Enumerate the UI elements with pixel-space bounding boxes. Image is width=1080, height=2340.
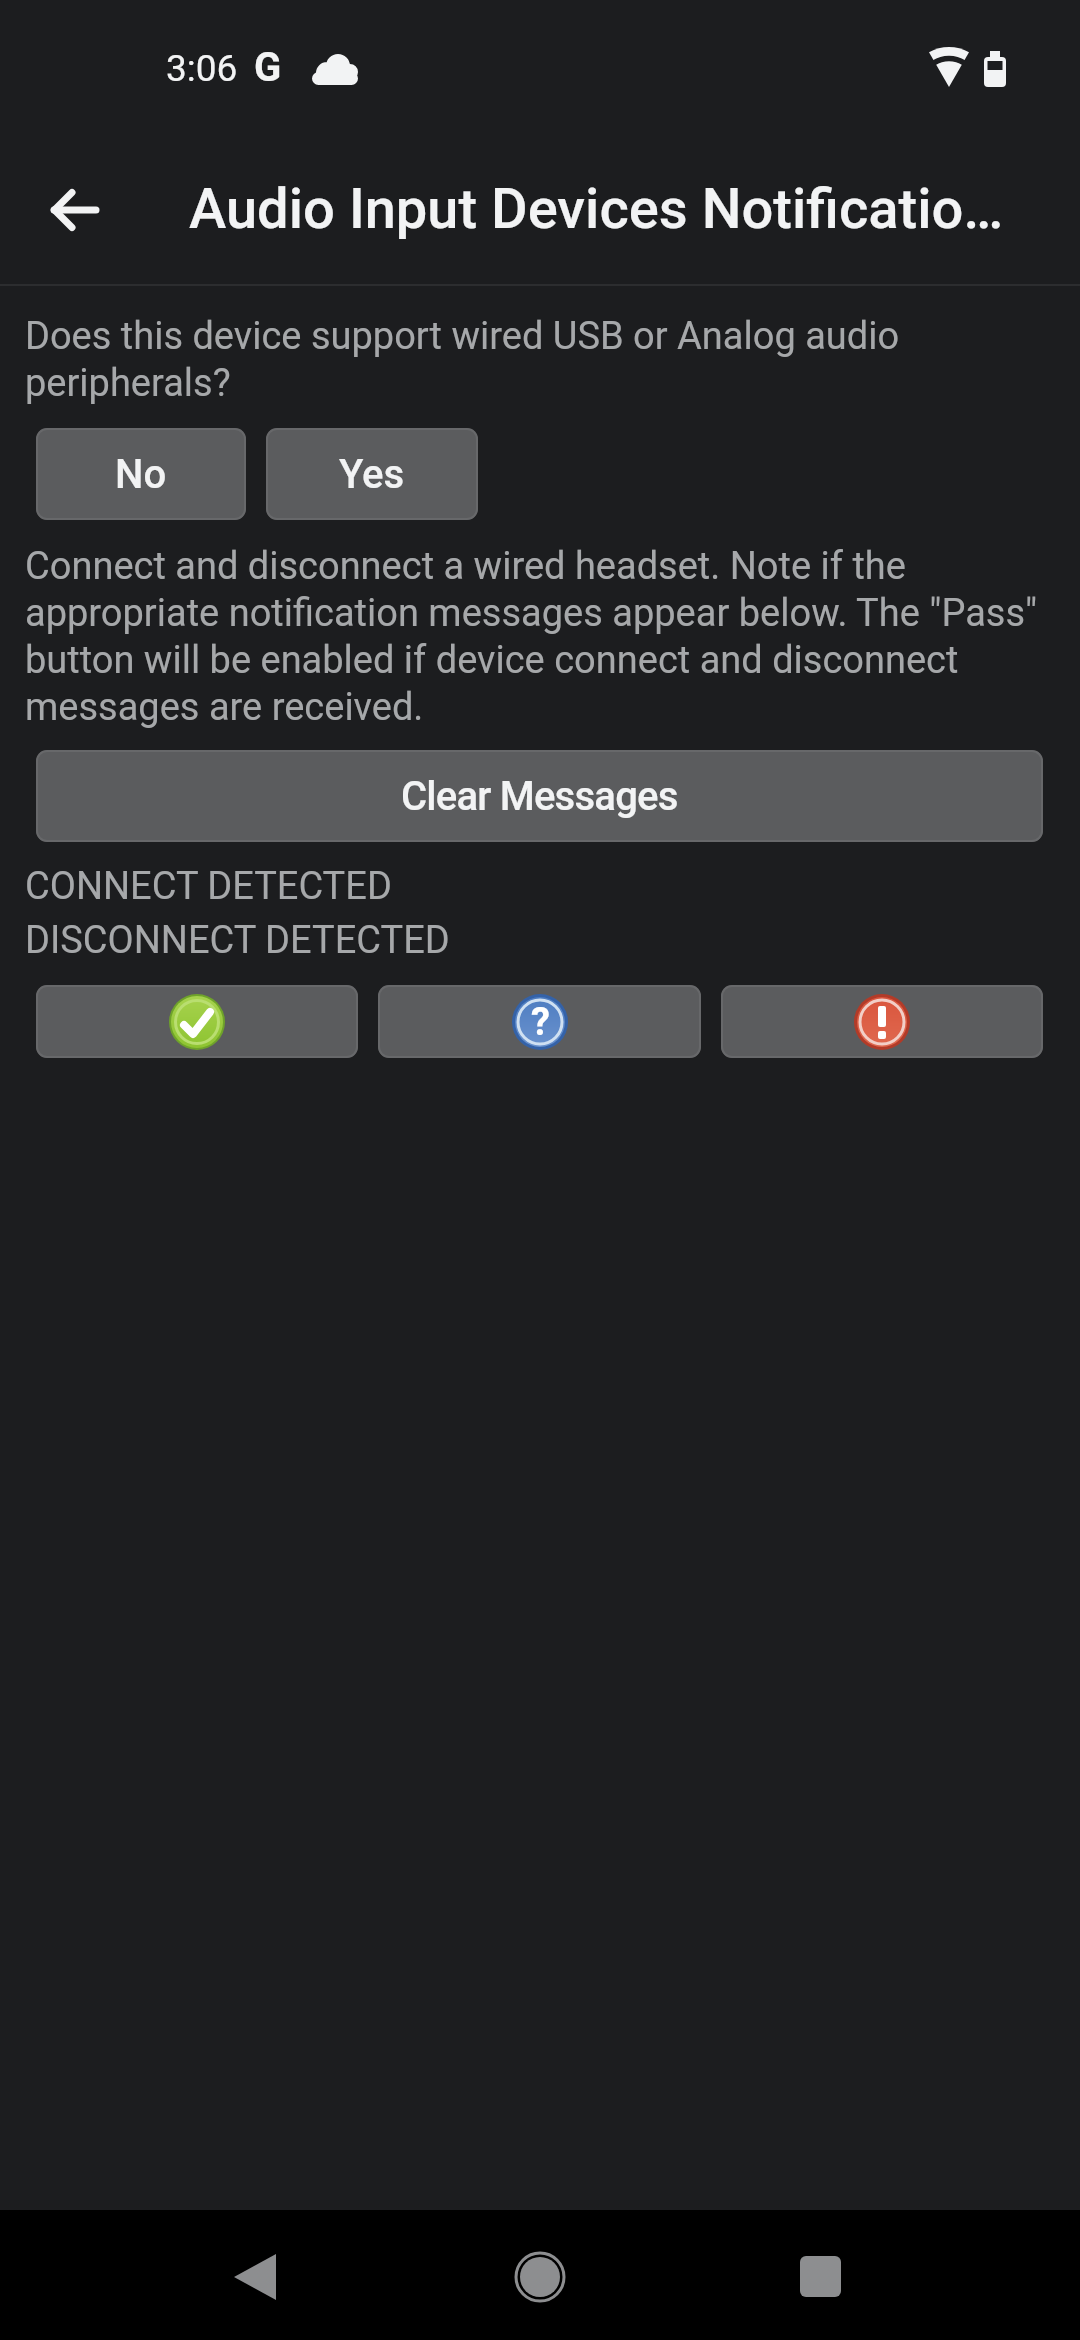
staticText: 3:06: [166, 47, 238, 90]
staticText: Yes: [339, 451, 405, 498]
button[interactable]: Yes: [266, 428, 478, 520]
button[interactable]: [514, 2251, 566, 2303]
button[interactable]: [52, 187, 98, 233]
staticText: Connect and disconnect a wired headset. …: [25, 544, 1038, 729]
button[interactable]: [721, 985, 1043, 1058]
staticText: No: [115, 451, 167, 498]
button[interactable]: Clear Messages: [36, 750, 1043, 842]
button[interactable]: [232, 2253, 278, 2301]
staticText: Clear Messages: [401, 773, 678, 820]
staticText: ?: [531, 1000, 550, 1045]
button[interactable]: [800, 2256, 841, 2297]
button[interactable]: ?: [378, 985, 701, 1058]
staticText: Audio Input Devices Notificatio…: [189, 176, 1003, 242]
button[interactable]: No: [36, 428, 246, 520]
staticText: G: [254, 44, 282, 91]
staticText: Does this device support wired USB or An…: [25, 314, 900, 405]
button[interactable]: [36, 985, 358, 1058]
staticText: CONNECT DETECTED: [25, 864, 392, 909]
staticText: DISCONNECT DETECTED: [25, 918, 450, 963]
